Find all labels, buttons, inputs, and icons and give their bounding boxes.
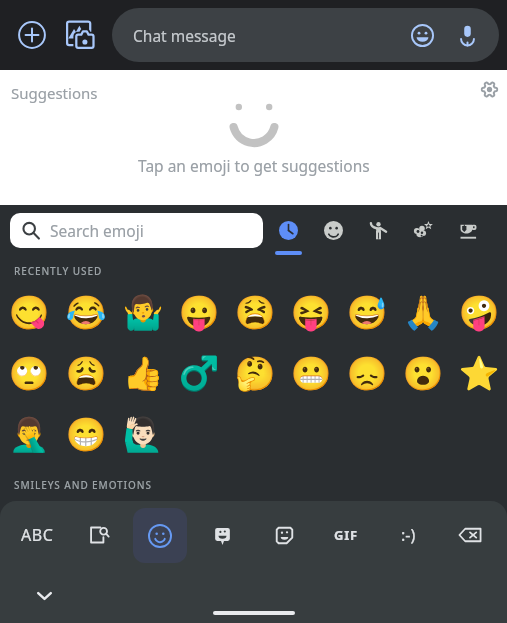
staticText: 🤷‍♂️ <box>122 293 164 332</box>
button[interactable]: 😝 <box>283 282 339 343</box>
staticText: 🙋🏻‍♂️ <box>122 415 164 454</box>
button[interactable]: 😮 <box>395 343 451 404</box>
button[interactable]: Emoticons <box>377 501 439 569</box>
staticText: ⭐ <box>458 354 500 393</box>
button[interactable]: 😛 <box>171 282 227 343</box>
button[interactable]: 😩 <box>57 343 114 404</box>
button[interactable]: Avatar stickers <box>253 501 315 569</box>
staticText: 😬 <box>290 354 332 393</box>
staticText: 😝 <box>290 293 332 332</box>
button[interactable]: Suggestion settings <box>474 74 504 104</box>
staticText: 🙄 <box>8 354 50 393</box>
staticText: SMILEYS AND EMOTIONS <box>14 478 152 492</box>
staticText: 😁 <box>65 415 107 454</box>
button[interactable]: ♂️ <box>171 343 227 404</box>
button[interactable]: 😫 <box>227 282 283 343</box>
staticText: Suggestions <box>11 83 98 103</box>
button[interactable]: Backspace <box>439 501 501 569</box>
button[interactable]: 🙋🏻‍♂️ <box>114 404 171 465</box>
staticText: 😛 <box>178 293 220 332</box>
button[interactable]: Add attachment <box>9 12 55 58</box>
staticText: Tap an emoji to get suggestions <box>138 155 370 176</box>
staticText: 😮 <box>402 354 444 393</box>
staticText: GIF <box>334 526 359 544</box>
button[interactable]: Smileys and emotions <box>311 213 356 248</box>
button[interactable]: Chat message <box>112 8 499 62</box>
staticText: 🤔 <box>234 354 276 393</box>
button[interactable]: Gallery <box>57 12 103 58</box>
staticText: 😩 <box>65 354 107 393</box>
button[interactable]: Search images <box>68 501 129 569</box>
staticText: 😫 <box>234 293 276 332</box>
button[interactable]: Insert emoji <box>405 18 439 52</box>
staticText: Search emoji <box>50 220 144 241</box>
button[interactable]: Hide keyboard <box>25 576 63 614</box>
button[interactable]: 😋 <box>0 282 57 343</box>
button[interactable]: 😅 <box>339 282 395 343</box>
staticText: 🙏 <box>402 293 444 332</box>
staticText: 👍 <box>122 354 164 393</box>
staticText: RECENTLY USED <box>14 264 103 278</box>
button[interactable]: Food and drink <box>446 213 491 248</box>
button[interactable]: Emoji keyboard <box>133 508 187 563</box>
button[interactable]: 🙄 <box>0 343 57 404</box>
staticText: 🤪 <box>458 293 500 332</box>
staticText: ♂️ <box>178 354 220 393</box>
staticText: 😞 <box>346 354 388 393</box>
staticText: 😂 <box>65 293 107 332</box>
staticText: :-) <box>401 524 416 546</box>
button[interactable]: 👍 <box>114 343 171 404</box>
button[interactable]: GIF <box>315 501 377 569</box>
button[interactable]: 😁 <box>57 404 114 465</box>
button[interactable]: 🤔 <box>227 343 283 404</box>
button[interactable]: Search emoji <box>10 213 263 248</box>
button[interactable]: 😬 <box>283 343 339 404</box>
button[interactable]: People <box>356 213 401 248</box>
button[interactable]: ABC keyboard <box>7 501 68 569</box>
staticText: 😋 <box>8 293 50 332</box>
button[interactable]: 🤷‍♂️ <box>114 282 171 343</box>
button[interactable]: Recently used <box>266 213 311 248</box>
button[interactable]: Stickers <box>191 501 253 569</box>
button[interactable]: 😞 <box>339 343 395 404</box>
button[interactable]: 🤦‍♂️ <box>0 404 57 465</box>
staticText: ABC <box>21 524 54 546</box>
button[interactable]: ⭐ <box>451 343 507 404</box>
staticText: Chat message <box>133 25 236 46</box>
staticText: 😅 <box>346 293 388 332</box>
button[interactable]: 😂 <box>57 282 114 343</box>
staticText: 🤦‍♂️ <box>8 415 50 454</box>
button[interactable]: Voice input <box>451 19 483 51</box>
button[interactable]: Animals and nature <box>401 213 446 248</box>
button[interactable]: 🤪 <box>451 282 507 343</box>
button[interactable]: 🙏 <box>395 282 451 343</box>
